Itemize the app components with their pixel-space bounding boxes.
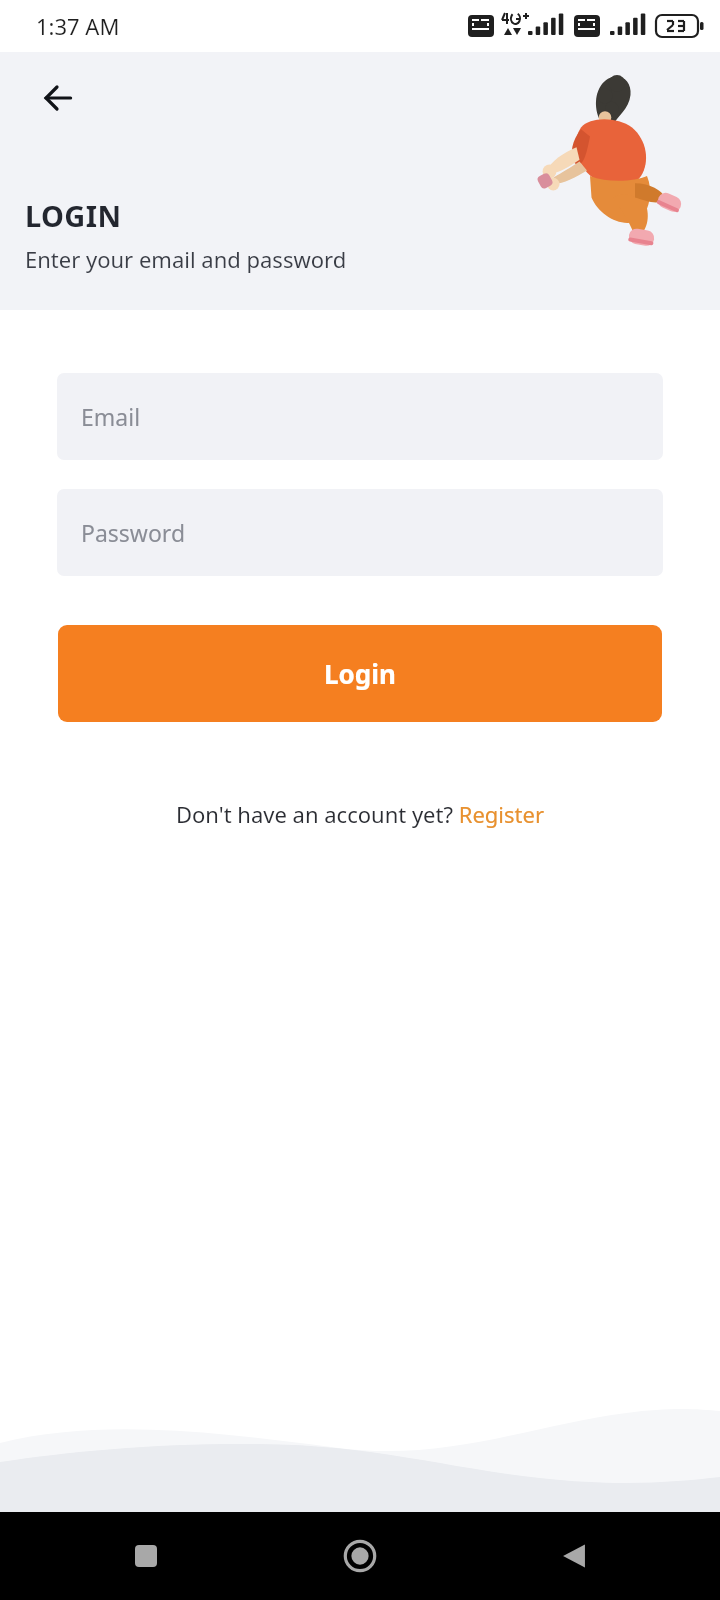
- staticText: 1:37 AM: [36, 11, 120, 41]
- staticText: Email: [81, 401, 141, 432]
- button[interactable]: Don't have an account yet? Register: [168, 795, 552, 833]
- staticText: Enter your email and password: [25, 244, 347, 274]
- button[interactable]: Email: [57, 373, 663, 460]
- button[interactable]: Back: [480, 1512, 720, 1600]
- button[interactable]: Recent apps: [0, 1512, 240, 1600]
- staticText: Login: [324, 656, 396, 691]
- staticText: Password: [81, 517, 186, 548]
- staticText: Don't have an account yet? Register: [176, 799, 544, 829]
- button[interactable]: Back: [34, 74, 82, 122]
- button[interactable]: Password: [57, 489, 663, 576]
- button[interactable]: Home: [240, 1512, 480, 1600]
- staticText: LOGIN: [25, 196, 122, 235]
- button[interactable]: Login: [58, 625, 662, 722]
